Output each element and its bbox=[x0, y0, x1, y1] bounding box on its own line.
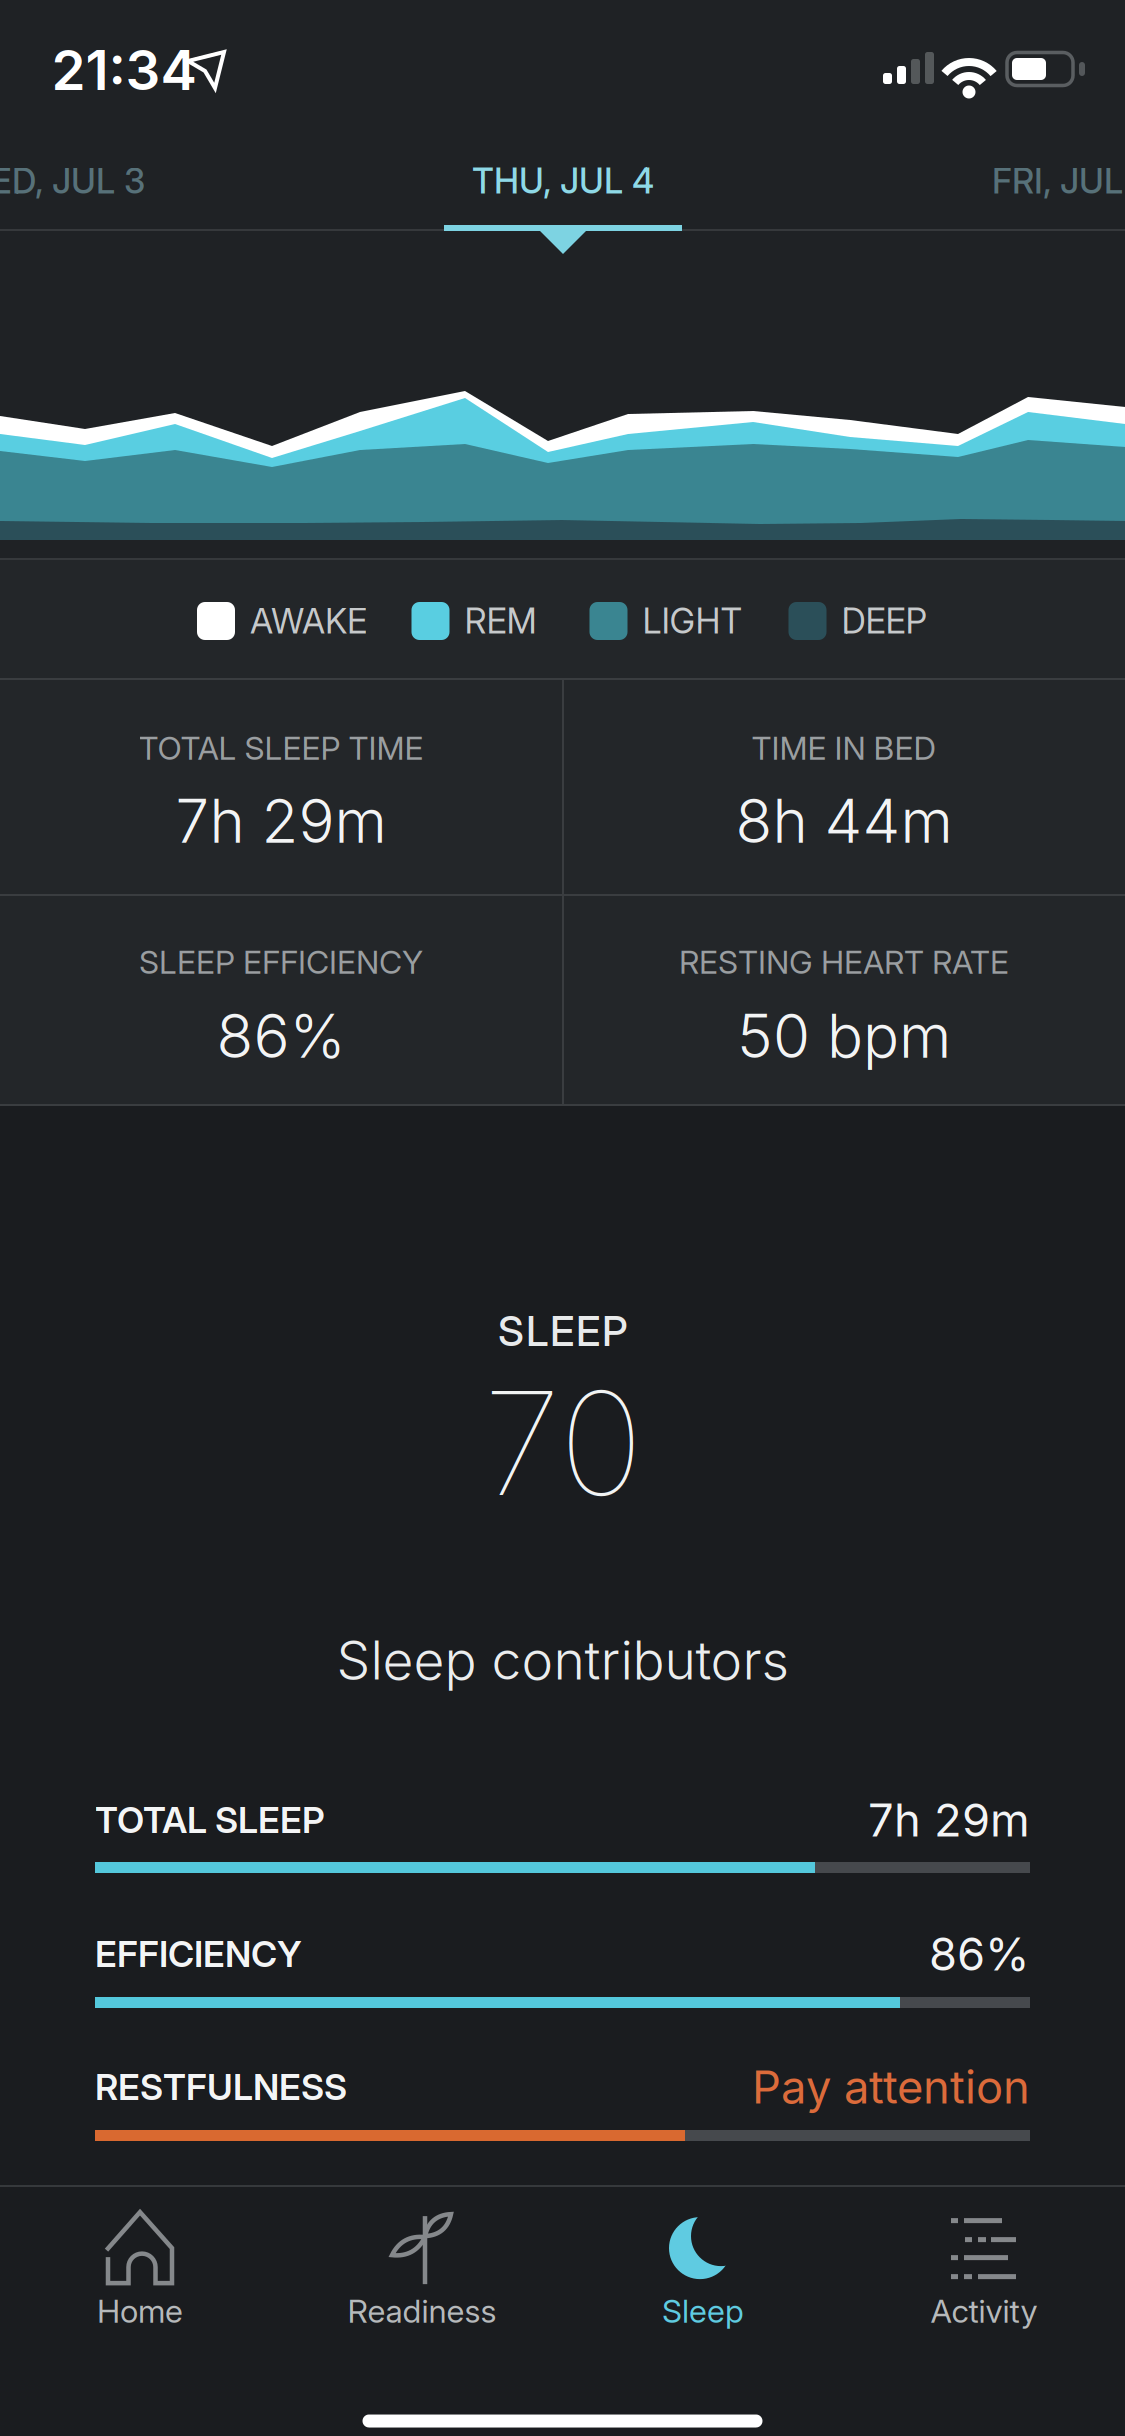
staticText: 8h 44m bbox=[735, 786, 952, 856]
staticText: FRI, JUL 5 bbox=[992, 161, 1125, 201]
staticText: LIGHT bbox=[642, 601, 742, 641]
staticText: TOTAL SLEEP bbox=[95, 1799, 325, 1841]
button[interactable]: Sleep bbox=[563, 2208, 843, 2330]
staticText: DEEP bbox=[841, 601, 927, 641]
staticText: Home bbox=[97, 2292, 183, 2330]
button[interactable]: Activity bbox=[844, 2208, 1124, 2330]
staticText: Activity bbox=[930, 2292, 1037, 2330]
staticText: Sleep contributors bbox=[336, 1628, 789, 1691]
staticText: RESTFULNESS bbox=[95, 2066, 347, 2108]
staticText: 70 bbox=[483, 1359, 643, 1527]
staticText: ED, JUL 3 bbox=[0, 161, 145, 201]
staticText: 86% bbox=[216, 1001, 345, 1071]
staticText: TOTAL SLEEP TIME bbox=[138, 729, 423, 767]
button[interactable]: Readiness bbox=[282, 2208, 562, 2330]
button[interactable]: Home bbox=[0, 2208, 280, 2330]
staticText: EFFICIENCY bbox=[95, 1933, 302, 1975]
staticText: SLEEP EFFICIENCY bbox=[139, 943, 423, 981]
staticText: RESTING HEART RATE bbox=[679, 943, 1009, 981]
staticText: 86% bbox=[929, 1927, 1030, 1981]
staticText: 50 bpm bbox=[737, 1001, 951, 1071]
staticText: 7h 29m bbox=[175, 786, 386, 856]
staticText: 21:34 bbox=[51, 38, 196, 102]
staticText: Pay attention bbox=[752, 2060, 1030, 2114]
staticText: TIME IN BED bbox=[751, 729, 936, 767]
button[interactable]: FRI, JUL 5 bbox=[992, 161, 1125, 201]
button[interactable]: ED, JUL 3 bbox=[0, 161, 145, 201]
staticText: Readiness bbox=[347, 2292, 496, 2330]
staticText: S L E E P bbox=[498, 1307, 628, 1355]
staticText: REM bbox=[464, 601, 536, 641]
staticText: Sleep bbox=[662, 2292, 744, 2330]
staticText: AWAKE bbox=[250, 601, 367, 641]
staticText: 7h 29m bbox=[868, 1793, 1030, 1847]
staticText: THU, JUL 4 bbox=[472, 161, 654, 201]
button[interactable]: THU, JUL 4 bbox=[472, 161, 654, 201]
